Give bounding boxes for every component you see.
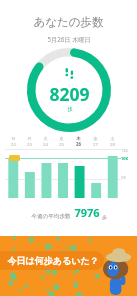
staticText: 今週の平均歩数 xyxy=(31,213,71,220)
staticText: 5月26日 木曜日 xyxy=(47,35,91,43)
button[interactable]: 今日は何歩あるいた？ xyxy=(0,236,137,296)
staticText: 26 xyxy=(76,141,81,147)
staticText: 土 xyxy=(110,136,115,141)
staticText: 28 xyxy=(110,141,115,147)
staticText: 今日は何歩あるいた？ xyxy=(7,255,99,266)
staticText: 木 xyxy=(76,136,81,141)
staticText: 23 xyxy=(27,141,32,147)
staticText: 10K xyxy=(121,156,128,161)
staticText: あなたの歩数 xyxy=(33,15,104,29)
button[interactable]: 今日の歩数 8209歩 xyxy=(27,48,111,132)
staticText: 8209 xyxy=(49,82,90,106)
other: マスコットキャラクター xyxy=(98,244,134,296)
staticText: 24 xyxy=(43,141,48,147)
staticText: 日 xyxy=(11,136,16,141)
staticText: 22 xyxy=(11,141,16,147)
staticText: 水 xyxy=(59,136,64,141)
staticText: 27 xyxy=(93,141,98,147)
staticText: 25 xyxy=(59,141,64,147)
staticText: 歩 xyxy=(102,214,107,220)
staticText: 歩 xyxy=(67,106,73,113)
staticText: 7976 xyxy=(74,205,100,220)
staticText: 火 xyxy=(43,136,48,141)
staticText: 月 xyxy=(27,136,32,141)
staticText: 金 xyxy=(93,136,98,141)
staticText: 5K xyxy=(121,175,126,180)
staticText: 12K xyxy=(121,148,128,153)
